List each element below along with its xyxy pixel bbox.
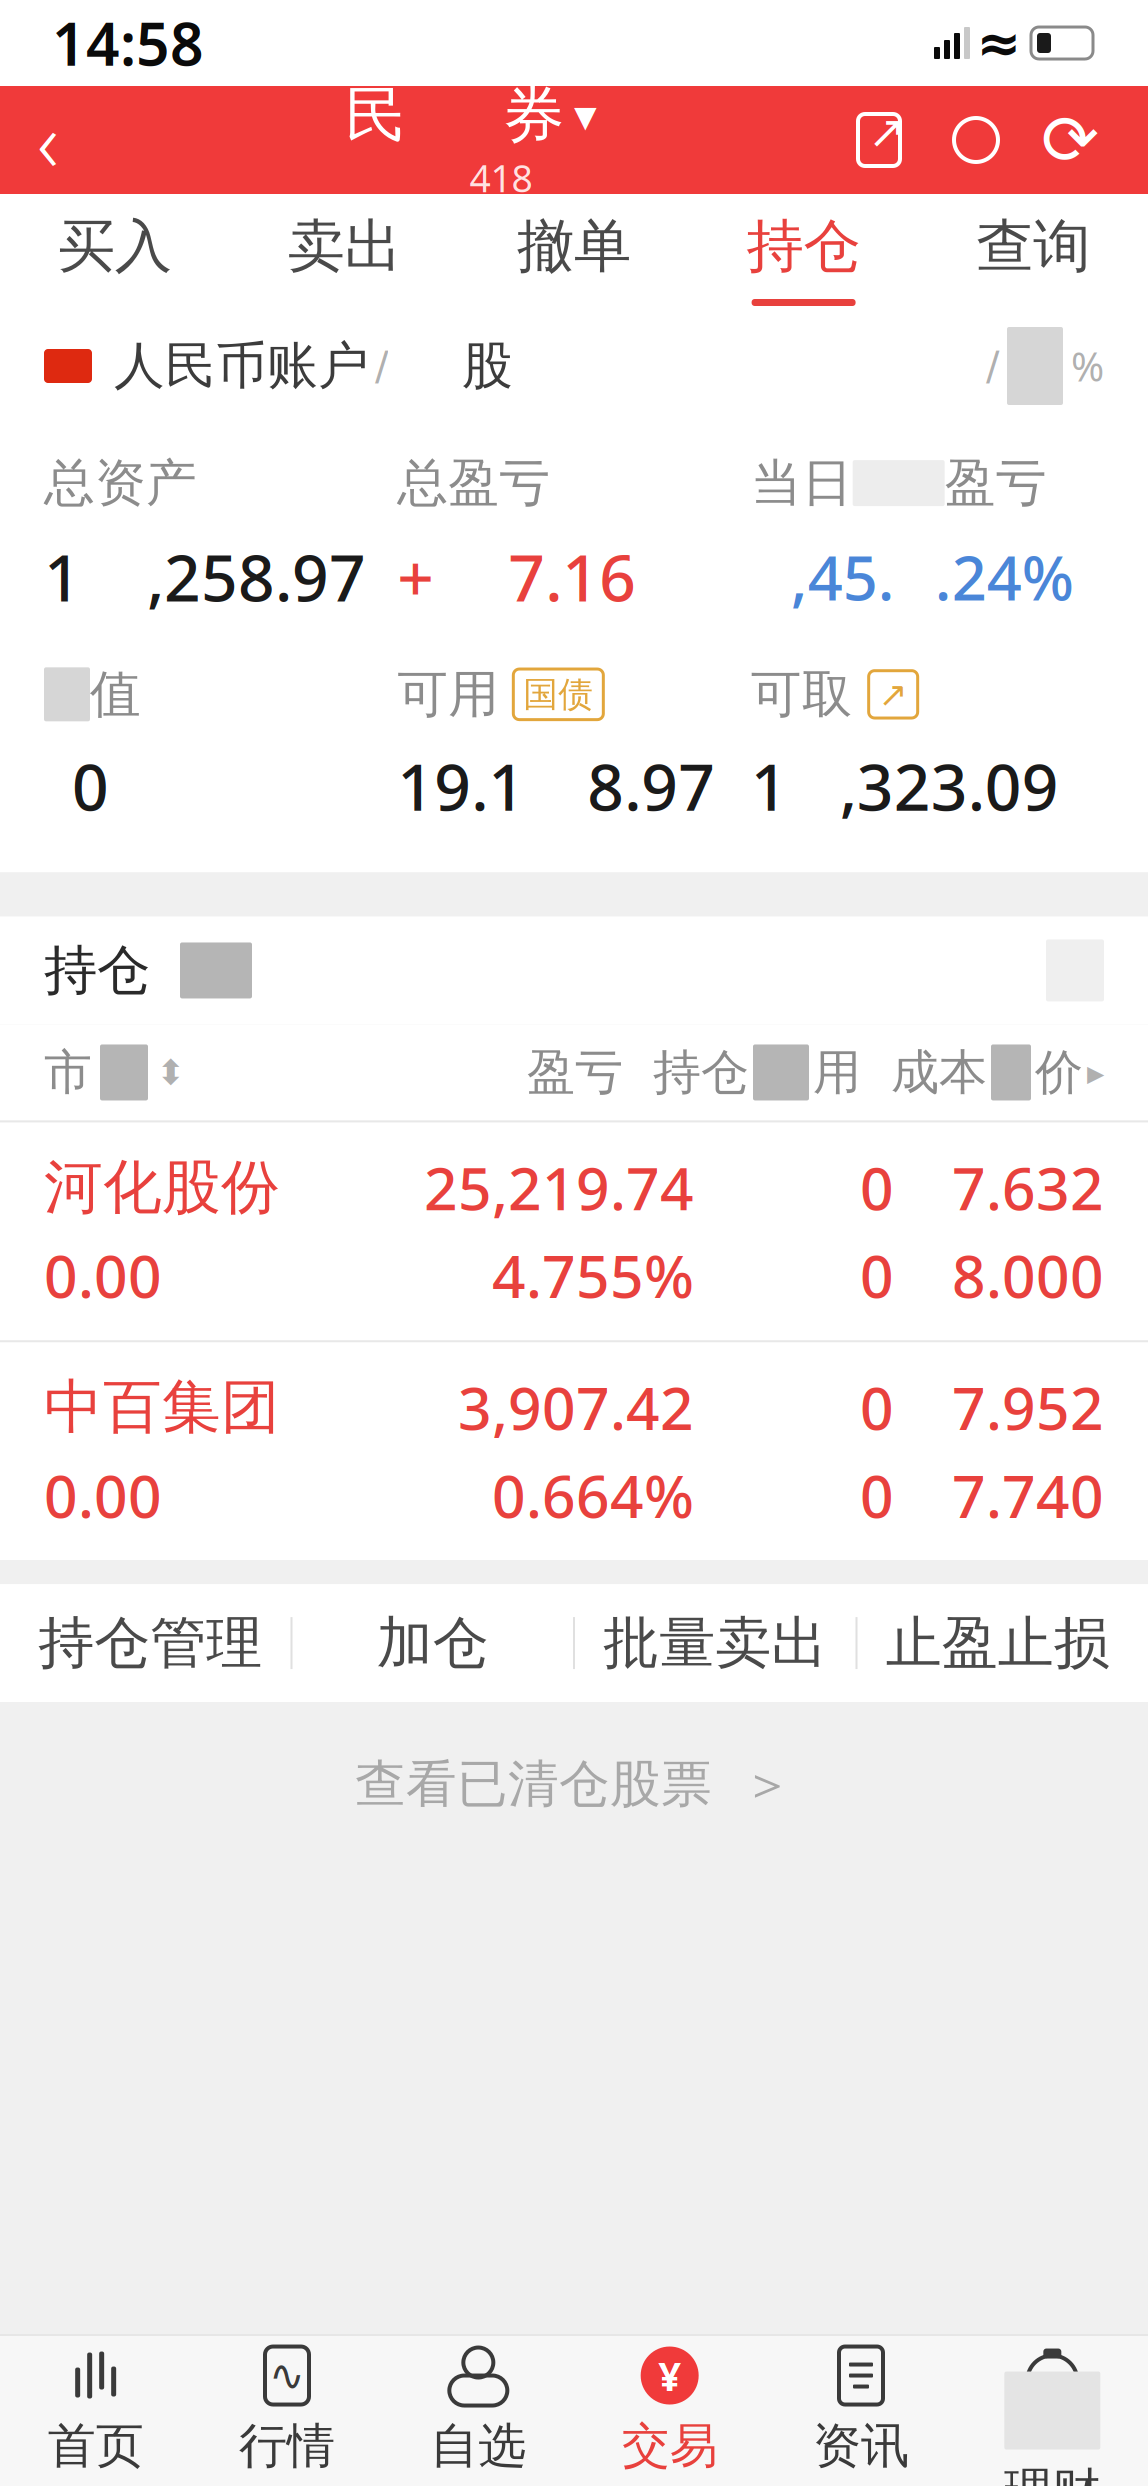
staticText: 7.740 [952, 1456, 1104, 1534]
button[interactable]: 河化股份 [0, 1120, 1148, 1340]
button[interactable]: 持仓管理 [10, 1584, 290, 1702]
button[interactable]: Refresh [1040, 107, 1100, 173]
staticText: % [1071, 339, 1104, 392]
staticText: 成本 [891, 1043, 987, 1102]
staticText: 国债 [523, 673, 593, 716]
staticText: ⟳ [1041, 101, 1099, 179]
button[interactable]: 人民币账户 [0, 314, 1148, 418]
staticText: ⬍ [156, 1053, 185, 1092]
staticText: 25,219.74 [424, 1148, 694, 1226]
staticText: ,45. [791, 536, 895, 617]
staticText: 总盈亏 [397, 452, 550, 514]
staticText: 7.16 [508, 534, 636, 619]
staticText: 股 [462, 335, 513, 397]
staticText: 0.00 [44, 1236, 162, 1314]
button[interactable]: 查看已清仓股票 ＞ [0, 1724, 1148, 1844]
staticText: 0 [860, 1368, 894, 1446]
staticText: 7.632 [952, 1148, 1104, 1226]
staticText: 0 [860, 1148, 894, 1226]
staticText: 交易 [622, 2416, 718, 2475]
staticText: 理财 [1004, 2461, 1100, 2486]
staticText: 0.00 [44, 1456, 162, 1534]
staticText: 1 [44, 534, 81, 619]
staticText: 查询 [976, 211, 1090, 282]
staticText: 8.000 [952, 1236, 1104, 1314]
staticText: 首页 [48, 2416, 144, 2475]
staticText: + [397, 534, 434, 619]
staticText: .24% [935, 536, 1074, 617]
staticText: 市 [44, 1043, 92, 1102]
staticText: 河化股份 [44, 1151, 280, 1223]
staticText: 4.755% [492, 1236, 694, 1314]
staticText: ∕ [986, 343, 999, 389]
staticText: 持仓 [653, 1043, 749, 1102]
staticText: 盈亏 [945, 452, 1047, 514]
staticText: 撤单 [517, 211, 631, 282]
staticText: 资讯 [813, 2416, 909, 2475]
staticText: 可取 [751, 663, 853, 725]
staticText: ↗ [868, 106, 906, 158]
staticText: 可用 [397, 663, 499, 725]
staticText: 持仓 [44, 938, 150, 1003]
staticText: 0.664% [492, 1456, 694, 1534]
button[interactable]: 持仓 [689, 194, 918, 314]
button[interactable]: Search [946, 107, 1006, 173]
staticText: ≈ [976, 13, 1021, 73]
button[interactable]: 撤单 [459, 194, 689, 314]
staticText: 卖出 [287, 211, 401, 282]
staticText: 止盈止损 [886, 1609, 1110, 1677]
button[interactable]: 加仓 [292, 1584, 573, 1702]
staticText: ↗ [879, 675, 908, 714]
staticText: 14:58 [52, 4, 204, 82]
staticText: 总资产 [44, 452, 197, 514]
staticText: ‹ [37, 85, 59, 195]
staticText: 8.97 [587, 743, 715, 828]
staticText: 用 [813, 1043, 861, 1102]
staticText: 盈亏 [527, 1043, 623, 1102]
staticText: 加仓 [377, 1609, 489, 1677]
staticText: 中百集团 [44, 1371, 280, 1443]
staticText: ¥ [658, 2349, 681, 2402]
button[interactable]: 首页 [0, 2336, 191, 2486]
button[interactable]: 查询 [918, 194, 1148, 314]
staticText: ▸ [1087, 1053, 1104, 1092]
staticText: ,323.09 [840, 743, 1059, 828]
staticText: 行情 [239, 2416, 335, 2475]
staticText: 民 券 [345, 77, 564, 153]
button[interactable]: 卖出 [230, 194, 459, 314]
button[interactable]: ¥ [574, 2336, 765, 2486]
staticText: ∕ [375, 343, 388, 389]
button[interactable]: 止盈止损 [857, 1584, 1138, 1702]
button[interactable]: ∿ [191, 2336, 383, 2486]
staticText: 19.1 [397, 743, 525, 828]
staticText: 持仓 [747, 211, 861, 282]
button[interactable]: 资讯 [765, 2336, 957, 2486]
staticText: 自选 [430, 2416, 526, 2475]
staticText: 买入 [58, 211, 172, 282]
button[interactable]: 中百集团 [0, 1340, 1148, 1560]
button[interactable]: 买入 [0, 194, 230, 314]
staticText: 7.952 [952, 1368, 1104, 1446]
staticText: 0 [860, 1236, 894, 1314]
staticText: 当日 [751, 452, 853, 514]
staticText: 人民币账户 [114, 335, 369, 397]
staticText: 0 [860, 1456, 894, 1534]
staticText: 持仓管理 [38, 1609, 262, 1677]
button[interactable]: 自选 [383, 2336, 574, 2486]
button[interactable]: Share [846, 107, 912, 173]
staticText: ,258.97 [147, 534, 366, 619]
button[interactable]: 批量卖出 [575, 1584, 855, 1702]
staticText: 批量卖出 [603, 1609, 827, 1677]
button[interactable]: 理财 [957, 2336, 1148, 2486]
staticText: 418 [469, 153, 532, 202]
staticText: 值 [90, 663, 141, 725]
staticText: 1 [751, 743, 788, 828]
button[interactable]: Back [0, 90, 96, 190]
staticText: ∿ [269, 2351, 305, 2400]
button[interactable]: 民 券 [335, 77, 607, 202]
staticText: 价 [1035, 1043, 1083, 1102]
staticText: ▾ [574, 89, 597, 141]
staticText: 查看已清仓股票 ＞ [355, 1753, 793, 1815]
staticText: 3,907.42 [458, 1368, 694, 1446]
staticText: 0 [72, 743, 109, 828]
